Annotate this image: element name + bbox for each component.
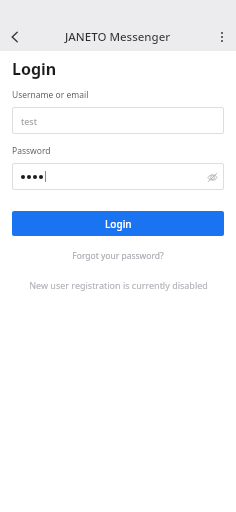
button[interactable]: Login (12, 211, 224, 236)
staticText: Password (12, 145, 51, 157)
staticText: Login (12, 58, 57, 80)
staticText: Username or email (12, 89, 89, 101)
button[interactable]: test (12, 107, 224, 134)
staticText: JANETO Messenger (65, 29, 171, 45)
button[interactable]: More options (208, 23, 236, 51)
button[interactable]: Back (0, 22, 30, 51)
staticText: Forgot your password? (72, 250, 164, 262)
button[interactable]: Show password (200, 165, 224, 189)
button[interactable]: Forgot your password? (12, 250, 224, 262)
staticText: Login (105, 217, 132, 231)
staticText: test (21, 115, 37, 127)
button[interactable]: Show password (12, 163, 224, 190)
staticText: New user registration is currently disab… (29, 279, 208, 291)
